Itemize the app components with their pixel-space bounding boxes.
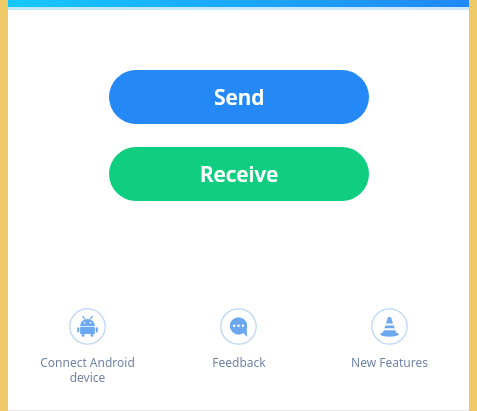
staticText: Receive — [200, 160, 279, 189]
staticText: Send — [214, 83, 265, 112]
button[interactable]: New Features — [314, 306, 465, 372]
button[interactable]: Connect Android device — [12, 306, 163, 387]
staticText: New Features — [351, 354, 428, 370]
staticText: Feedback — [212, 354, 266, 370]
button[interactable]: Receive — [109, 147, 369, 201]
button[interactable]: Feedback — [163, 306, 314, 372]
button[interactable]: Send — [109, 70, 369, 124]
staticText: Connect Android device — [40, 354, 135, 385]
